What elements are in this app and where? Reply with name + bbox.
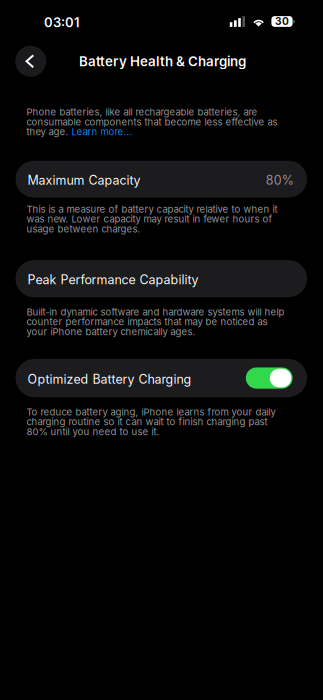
staticText: Optimized Battery Charging — [27, 372, 191, 387]
staticText: This is a measure of battery capacity re… — [26, 203, 277, 235]
staticText: Battery Health & Charging — [79, 53, 246, 69]
button[interactable]: Optimized Battery Charging — [15, 359, 307, 397]
staticText: 30 — [275, 15, 289, 27]
staticText: 03:01 — [44, 14, 80, 30]
button[interactable]: Peak Performance Capability — [15, 260, 307, 297]
button[interactable]: Back — [15, 46, 46, 77]
staticText: To reduce battery aging, iPhone learns f… — [26, 406, 275, 437]
staticText: Peak Performance Capability — [27, 272, 198, 287]
staticText: Phone batteries, like all rechargeable b… — [26, 106, 277, 138]
staticText: Maximum Capacity — [27, 173, 140, 188]
staticText: Built-in dynamic software and hardware s… — [26, 306, 284, 337]
staticText: 80% — [266, 173, 294, 188]
button[interactable]: Maximum Capacity — [15, 161, 307, 197]
